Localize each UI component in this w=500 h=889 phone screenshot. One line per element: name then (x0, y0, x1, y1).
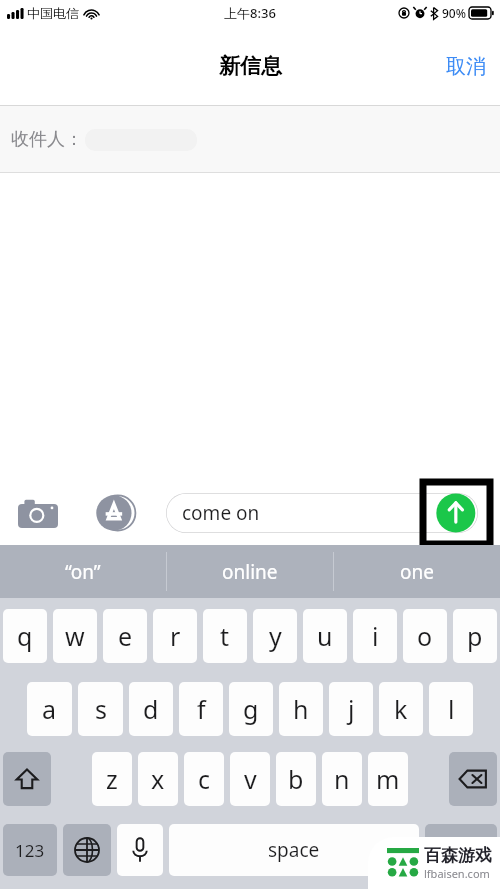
staticText: 上午8:36 (224, 4, 276, 22)
button[interactable]: j (329, 682, 373, 736)
button[interactable]: come on (166, 493, 478, 533)
button[interactable]: v (230, 752, 270, 806)
staticText: 取消 (446, 54, 486, 79)
staticText: d (143, 692, 159, 726)
staticText: i (372, 619, 379, 653)
staticText: v (244, 762, 257, 796)
button[interactable]: Camera (16, 493, 60, 533)
staticText: one (400, 559, 434, 585)
button[interactable]: App Store (94, 491, 138, 535)
button[interactable]: o (403, 609, 447, 663)
staticText: online (222, 559, 278, 585)
button[interactable]: l (429, 682, 473, 736)
button[interactable]: 123 (3, 824, 57, 876)
staticText: z (106, 762, 118, 796)
staticText: w (65, 619, 85, 653)
staticText: m (376, 762, 400, 796)
button[interactable]: Switch keyboard (63, 824, 111, 876)
button[interactable]: space (169, 824, 419, 876)
button[interactable]: 取消 (432, 46, 500, 87)
button[interactable]: w (53, 609, 97, 663)
button[interactable]: Send (423, 482, 490, 544)
button[interactable]: q (3, 609, 47, 663)
button[interactable]: y (253, 609, 297, 663)
staticText: p (467, 619, 483, 653)
staticText: s (95, 692, 107, 726)
button[interactable]: h (279, 682, 323, 736)
button[interactable]: 收件人： (0, 106, 500, 173)
staticText: space (268, 837, 320, 863)
staticText: j (348, 692, 355, 726)
button[interactable]: Shift (3, 752, 51, 806)
button[interactable] (425, 824, 497, 876)
staticText: q (17, 619, 33, 653)
staticText: x (151, 762, 165, 796)
staticText: come on (182, 500, 260, 526)
button[interactable]: e (103, 609, 147, 663)
staticText: 新信息 (219, 53, 282, 79)
staticText: t (220, 619, 230, 653)
staticText: f (197, 692, 206, 726)
staticText: lfbaisen.com (424, 866, 490, 881)
button[interactable]: Backspace (449, 752, 497, 806)
button[interactable]: Dictation (117, 824, 163, 876)
staticText: o (417, 619, 433, 653)
staticText: r (170, 619, 181, 653)
button[interactable]: p (453, 609, 497, 663)
staticText: n (334, 762, 350, 796)
staticText: 收件人： (11, 128, 83, 151)
staticText: 百森游戏 (424, 845, 492, 866)
button[interactable]: u (303, 609, 347, 663)
button[interactable]: m (368, 752, 408, 806)
button[interactable]: g (229, 682, 273, 736)
staticText: 90% (442, 5, 466, 21)
button[interactable]: c (184, 752, 224, 806)
button[interactable]: f (179, 682, 223, 736)
button[interactable]: online (167, 545, 333, 598)
button[interactable]: t (203, 609, 247, 663)
button[interactable]: k (379, 682, 423, 736)
staticText: u (317, 619, 333, 653)
staticText: g (243, 692, 259, 726)
staticText: 中国电信 (27, 5, 79, 21)
button[interactable]: s (78, 682, 123, 736)
button[interactable]: d (129, 682, 173, 736)
button[interactable]: “on” (0, 545, 166, 598)
staticText: c (198, 762, 211, 796)
staticText: “on” (65, 559, 101, 585)
button[interactable]: one (334, 545, 500, 598)
staticText: e (118, 619, 133, 653)
button[interactable]: z (92, 752, 132, 806)
staticText: 123 (15, 839, 45, 862)
staticText: y (269, 619, 282, 653)
staticText: h (293, 692, 309, 726)
button[interactable]: b (276, 752, 316, 806)
button[interactable]: a (27, 682, 72, 736)
staticText: b (288, 762, 304, 796)
staticText: a (42, 692, 57, 726)
button[interactable]: i (353, 609, 397, 663)
staticText: k (394, 692, 408, 726)
button[interactable]: n (322, 752, 362, 806)
button[interactable]: r (153, 609, 197, 663)
button[interactable]: x (138, 752, 178, 806)
staticText: l (448, 692, 455, 726)
